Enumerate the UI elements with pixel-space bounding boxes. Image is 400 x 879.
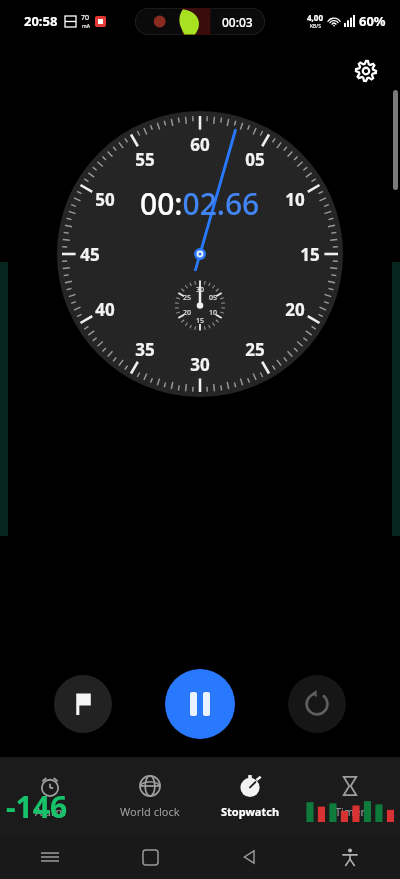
staticText: 25 (245, 338, 265, 361)
button[interactable]: Home (100, 835, 200, 879)
staticText: 10 (285, 188, 305, 211)
staticText: 4,00 (307, 12, 324, 23)
staticText: 00:02.66 (140, 183, 260, 224)
staticText: 00:03 (222, 14, 253, 30)
staticText: 55 (135, 148, 155, 171)
staticText: 05 (245, 148, 265, 171)
staticText: 15 (196, 316, 205, 326)
staticText: 45 (80, 243, 100, 266)
staticText: 60% (359, 12, 386, 30)
button[interactable]: Alarm (0, 766, 100, 827)
button[interactable]: Settings (346, 51, 386, 91)
staticText: mA (82, 23, 90, 30)
staticText: 20 (285, 298, 305, 321)
staticText: 15 (300, 243, 320, 266)
staticText: World clock (120, 804, 180, 819)
staticText: 50 (95, 188, 115, 211)
staticText: 20 (183, 308, 192, 318)
staticText: KB/S (310, 23, 321, 30)
staticText: 10 (209, 308, 218, 318)
staticText: 25 (183, 293, 192, 303)
staticText: Alarm (35, 804, 66, 819)
button[interactable]: Lap (54, 675, 112, 733)
button[interactable]: Reset (288, 675, 346, 733)
staticText: Stopwatch (221, 804, 280, 819)
button[interactable]: Recents (0, 835, 100, 879)
button[interactable]: Timer (300, 766, 400, 827)
button[interactable]: World clock (100, 766, 200, 827)
staticText: 35 (135, 338, 155, 361)
staticText: 70 (81, 13, 90, 23)
staticText: 05 (209, 293, 218, 303)
staticText: 60 (190, 133, 210, 156)
staticText: 30 (190, 353, 210, 376)
staticText: Timer (335, 804, 365, 819)
staticText: 30 (196, 285, 205, 295)
button[interactable]: Stopwatch (200, 766, 300, 827)
staticText: 40 (95, 298, 115, 321)
button[interactable]: Accessibility (300, 835, 400, 879)
staticText: 20:58 (24, 12, 58, 30)
staticText: -146 (6, 786, 68, 827)
button[interactable]: Pause (165, 669, 235, 739)
button[interactable]: Back (200, 835, 300, 879)
